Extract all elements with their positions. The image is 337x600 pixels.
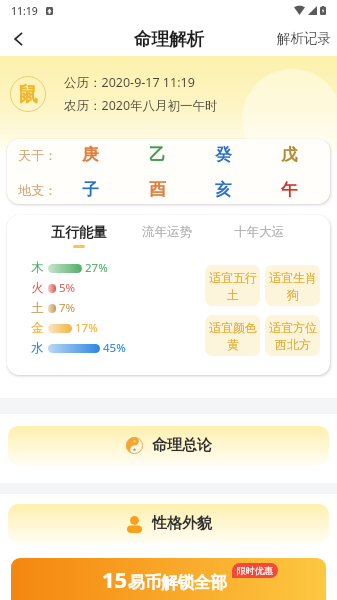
- button[interactable]: Back: [0, 21, 36, 56]
- staticText: 土: [227, 287, 239, 302]
- staticText: 黄: [227, 337, 239, 352]
- staticText: 十年大运: [234, 224, 284, 240]
- staticText: 解析记录: [277, 30, 331, 47]
- button[interactable]: 十年大运: [232, 224, 286, 243]
- staticText: 公历：2020-9-17 11:19: [64, 74, 195, 91]
- staticText: 适宜颜色: [209, 320, 257, 335]
- staticText: 45%: [103, 340, 126, 356]
- staticText: 农历：2020年八月初一午时: [64, 97, 218, 114]
- button[interactable]: 性格外貌: [8, 504, 329, 543]
- button[interactable]: 解析记录: [267, 22, 337, 55]
- button[interactable]: 五行能量: [49, 224, 109, 248]
- staticText: 5%: [59, 280, 76, 296]
- staticText: 水: [31, 340, 44, 356]
- staticText: 鼠: [18, 82, 38, 107]
- staticText: 西北方: [275, 337, 311, 352]
- staticText: 木: [31, 260, 44, 276]
- staticText: 酉: [149, 179, 166, 200]
- staticText: 流年运势: [142, 224, 192, 240]
- staticText: 易币解锁全部: [128, 572, 227, 593]
- staticText: 27%: [85, 260, 108, 276]
- staticText: 癸: [215, 144, 232, 165]
- staticText: 天干：: [18, 147, 57, 163]
- staticText: 地支：: [18, 182, 57, 198]
- staticText: 限时优惠: [237, 565, 273, 576]
- staticText: 适宜方位: [269, 320, 317, 335]
- staticText: 11:19: [11, 4, 38, 18]
- staticText: 乙: [149, 144, 166, 165]
- staticText: 性格外貌: [152, 514, 212, 533]
- staticText: 戊: [281, 144, 298, 165]
- staticText: 适宜生肖: [269, 270, 317, 285]
- staticText: 7%: [59, 300, 76, 316]
- staticText: 子: [82, 179, 99, 200]
- staticText: 17%: [75, 320, 98, 336]
- staticText: 命理解析: [134, 28, 204, 50]
- staticText: 午: [281, 179, 298, 200]
- staticText: 五行能量: [51, 224, 107, 242]
- button[interactable]: 命理总论: [8, 426, 329, 465]
- staticText: 命理总论: [152, 436, 212, 455]
- button[interactable]: 15: [11, 558, 326, 600]
- button[interactable]: 流年运势: [140, 224, 194, 243]
- staticText: 庚: [82, 144, 99, 165]
- staticText: 土: [31, 300, 44, 316]
- staticText: 火: [31, 280, 44, 296]
- staticText: 金: [31, 320, 44, 336]
- staticText: 亥: [215, 179, 232, 200]
- staticText: 15: [102, 564, 128, 594]
- staticText: 狗: [287, 287, 299, 302]
- staticText: 适宜五行: [209, 270, 257, 285]
